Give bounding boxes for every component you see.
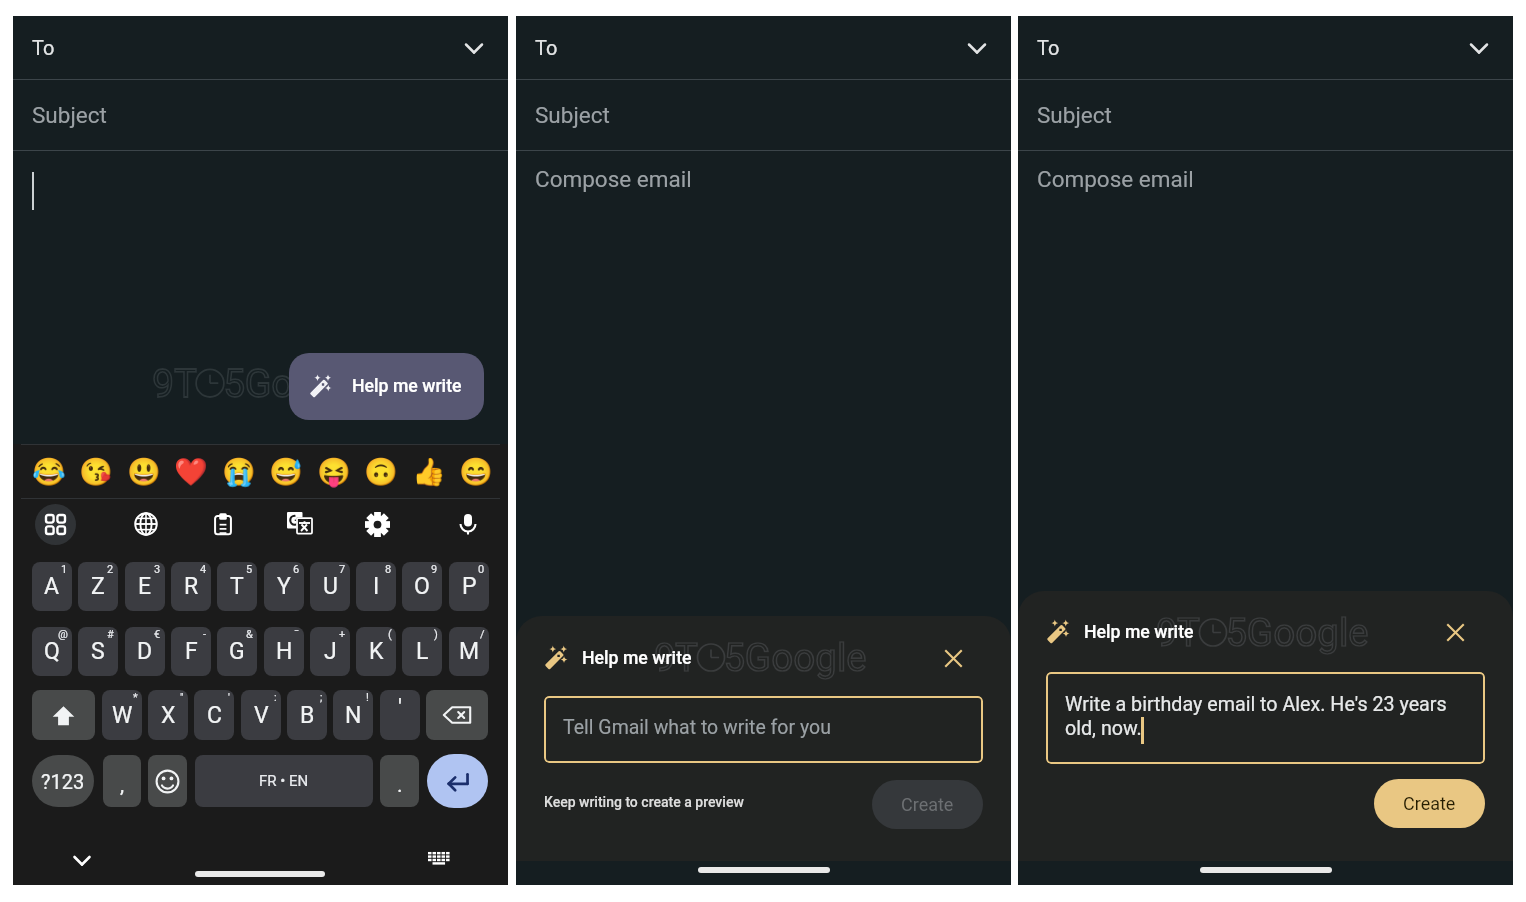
button[interactable]: ❤️: [167, 445, 215, 498]
button[interactable]: Translate: [273, 498, 325, 550]
button[interactable]: Create: [872, 780, 983, 829]
button[interactable]: 😄: [452, 445, 500, 498]
staticText: R: [184, 573, 199, 600]
staticText: X: [161, 702, 176, 729]
button[interactable]: Settings: [351, 498, 403, 550]
staticText: Create: [1403, 793, 1456, 814]
staticText: Y: [277, 573, 291, 600]
button[interactable]: Hide keyboard: [65, 843, 99, 877]
button[interactable]: Subject: [1018, 80, 1513, 150]
button[interactable]: C: [194, 690, 234, 740]
staticText: C: [207, 702, 222, 729]
button[interactable]: ': [380, 690, 420, 740]
button[interactable]: Switch keyboard: [422, 842, 456, 876]
staticText: 7: [339, 563, 346, 576]
button[interactable]: G: [217, 627, 257, 676]
button[interactable]: U: [310, 562, 350, 611]
button[interactable]: 😃: [120, 445, 168, 498]
staticText: 😭: [222, 456, 256, 488]
button[interactable]: To: [1018, 16, 1513, 79]
button[interactable]: Voice input: [442, 498, 494, 550]
button[interactable]: O: [402, 562, 442, 611]
button[interactable]: K: [356, 627, 396, 676]
button[interactable]: Emoji: [148, 755, 187, 807]
button[interactable]: Enter: [427, 754, 488, 808]
button[interactable]: 😅: [262, 445, 310, 498]
button[interactable]: F: [171, 627, 211, 676]
button[interactable]: V: [241, 690, 281, 740]
button[interactable]: Write a birthday email to Alex. He's 23 …: [1046, 672, 1485, 764]
button[interactable]: R: [171, 562, 211, 611]
button[interactable]: Close: [1438, 615, 1473, 650]
button[interactable]: Create: [1374, 779, 1485, 828]
staticText: T: [230, 573, 244, 600]
staticText: .: [397, 773, 403, 798]
button[interactable]: Backspace: [426, 690, 488, 740]
button[interactable]: Shift: [32, 690, 95, 740]
staticText: ,: [120, 773, 125, 798]
button[interactable]: 😝: [310, 445, 358, 498]
staticText: Help me write: [1084, 622, 1194, 643]
button[interactable]: 😘: [72, 445, 120, 498]
button[interactable]: Help me write: [289, 353, 484, 420]
button[interactable]: Q: [32, 627, 72, 676]
button[interactable]: Clipboard: [197, 498, 249, 550]
button[interactable]: H: [264, 627, 304, 676]
staticText: N: [345, 702, 362, 729]
staticText: 2: [107, 563, 114, 576]
staticText: L: [416, 638, 429, 665]
button[interactable]: J: [310, 627, 350, 676]
staticText: 😝: [317, 456, 351, 488]
button[interactable]: B: [287, 690, 327, 740]
staticText: S: [91, 638, 105, 665]
button[interactable]: To: [516, 16, 1011, 79]
staticText: Subject: [1037, 102, 1112, 128]
button[interactable]: E: [125, 562, 165, 611]
button[interactable]: I: [356, 562, 396, 611]
button[interactable]: 😭: [215, 445, 263, 498]
button[interactable]: Z: [78, 562, 118, 611]
button[interactable]: Subject: [13, 80, 508, 150]
button[interactable]: Expand recipients: [1459, 28, 1499, 68]
button[interactable]: T: [217, 562, 257, 611]
staticText: Subject: [535, 102, 610, 128]
staticText: 🙃: [364, 456, 398, 488]
button[interactable]: 🙃: [357, 445, 405, 498]
staticText: V: [254, 702, 269, 729]
staticText: -: [203, 628, 207, 641]
button[interactable]: Expand recipients: [957, 28, 997, 68]
button[interactable]: S: [78, 627, 118, 676]
button[interactable]: 👍: [405, 445, 453, 498]
button[interactable]: To: [13, 16, 508, 79]
button[interactable]: M: [449, 627, 489, 676]
staticText: 5: [246, 563, 253, 576]
button[interactable]: Y: [264, 562, 304, 611]
staticText: 😃: [127, 456, 161, 488]
button[interactable]: FR • EN: [195, 755, 373, 807]
button[interactable]: X: [148, 690, 188, 740]
button[interactable]: P: [449, 562, 489, 611]
button[interactable]: 😂: [25, 445, 73, 498]
button[interactable]: N: [333, 690, 373, 740]
button[interactable]: Tell Gmail what to write for you: [544, 696, 983, 763]
staticText: Subject: [32, 102, 107, 128]
staticText: Help me write: [582, 648, 692, 669]
button[interactable]: .: [380, 755, 419, 807]
staticText: ;: [320, 691, 323, 704]
staticText: 4: [200, 563, 207, 576]
button[interactable]: Language: [120, 498, 172, 550]
staticText: /: [480, 628, 485, 641]
button[interactable]: Close: [936, 641, 971, 676]
button[interactable]: Symbols: [29, 498, 81, 550]
button[interactable]: ?123: [32, 755, 94, 807]
staticText: 😂: [32, 456, 66, 488]
button[interactable]: W: [102, 690, 142, 740]
staticText: ?123: [41, 770, 85, 793]
button[interactable]: Expand recipients: [454, 28, 494, 68]
button[interactable]: Subject: [516, 80, 1011, 150]
button[interactable]: ,: [103, 755, 141, 807]
button[interactable]: L: [402, 627, 442, 676]
button[interactable]: D: [125, 627, 165, 676]
button[interactable]: A: [32, 562, 72, 611]
staticText: 👍: [412, 456, 446, 488]
